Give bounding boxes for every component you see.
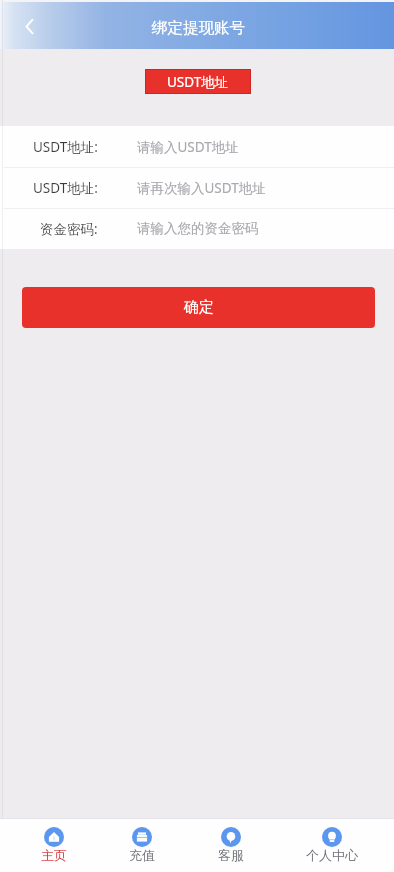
button[interactable]: USDT地址: — [0, 167, 394, 208]
button[interactable]: 个人中心 — [306, 828, 358, 864]
button[interactable]: 确定 — [22, 287, 375, 328]
button[interactable]: USDT地址 — [146, 70, 250, 93]
staticText: USDT地址: — [33, 138, 98, 156]
staticText: 绑定提现账号 — [152, 18, 245, 38]
staticText: 请输入USDT地址 — [137, 138, 239, 156]
staticText: 个人中心 — [306, 847, 358, 863]
button[interactable]: 主页 — [41, 828, 67, 864]
staticText: USDT地址 — [167, 73, 229, 91]
staticText: USDT地址: — [33, 179, 98, 197]
button[interactable]: 资金密码: — [0, 208, 394, 249]
staticText: 客服 — [218, 847, 244, 863]
staticText: 资金密码: — [40, 220, 98, 238]
button[interactable]: USDT地址: — [0, 126, 394, 167]
button[interactable]: Back — [0, 2, 52, 49]
staticText: 确定 — [184, 298, 214, 317]
button[interactable]: 充值 — [129, 828, 155, 864]
staticText: 请输入您的资金密码 — [137, 220, 259, 237]
button[interactable]: 客服 — [218, 828, 244, 864]
staticText: 请再次输入USDT地址 — [137, 179, 266, 197]
staticText: 充值 — [129, 847, 155, 863]
staticText: 主页 — [41, 847, 67, 863]
